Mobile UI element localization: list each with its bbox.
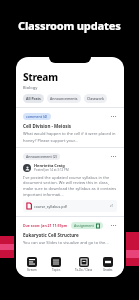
staticText: Stream [27,268,37,272]
button[interactable]: Classwork [84,94,107,103]
staticText: v1 [110,204,114,208]
staticText: Announcement (2) [26,154,57,159]
staticText: Henrietta Craig [34,163,65,168]
button[interactable]: Topics [46,257,66,272]
staticText: To-Do / Class [75,268,93,272]
staticText: Stream [23,70,58,84]
staticText: Classwork [87,96,104,101]
staticText: Assignment [74,223,94,228]
staticText: Eukaryotic Cell Structure [23,232,79,238]
staticText: Announcements [50,96,78,101]
button[interactable]: Due soon: Jan 21 11:59pm [16,217,124,249]
staticText: Classroom updates [18,18,121,33]
button[interactable]: comment (4) [16,108,124,147]
button[interactable]: Announcements [47,94,81,103]
staticText: course_syllabus.pdf [34,204,67,209]
staticText: Grades [103,268,113,272]
button[interactable]: course_syllabus.pdf [23,200,117,212]
button[interactable]: More options [109,112,117,120]
button[interactable]: More options [109,221,117,229]
staticText: Posted Jan 14 at 3:12 PM [34,168,69,172]
button[interactable]: comment (4) [23,113,51,120]
button[interactable]: To-Do / Class [74,257,94,272]
button[interactable]: More options [109,152,117,160]
staticText: Cell Division - Meiosis [23,123,72,129]
staticText: You can use Slides to visualize and go t… [23,240,109,245]
staticText: What would happen to the cell if it were… [23,131,117,143]
staticText: Biology [23,85,38,90]
button[interactable]: Announcement (2) [16,148,124,216]
staticText: Topics [52,268,61,272]
button[interactable]: Announcement (2) [23,153,60,160]
button[interactable]: Assignment [71,222,103,229]
staticText: Due soon: Jan 21 11:59pm [23,223,68,228]
button[interactable]: All Posts [23,94,44,103]
button[interactable]: Grades [98,257,118,272]
staticText: All Posts [26,96,41,101]
staticText: comment (4) [26,114,48,119]
staticText: I've posted the updated course syllabus … [23,175,117,197]
button[interactable]: Stream [22,257,42,272]
